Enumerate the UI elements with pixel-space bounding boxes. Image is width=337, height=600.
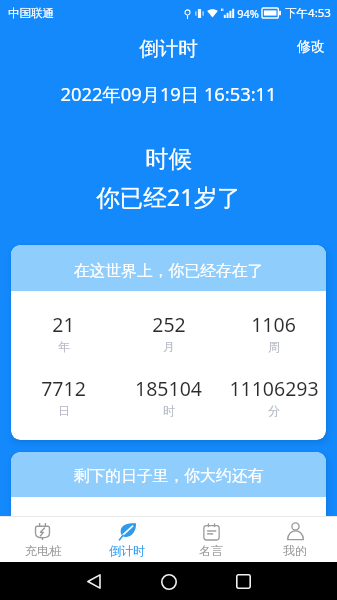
button[interactable]: 充电桩: [0, 517, 85, 562]
staticText: 7712: [41, 375, 86, 402]
staticText: 94%: [237, 6, 259, 21]
staticText: 日: [58, 403, 70, 418]
button[interactable]: 我的: [253, 517, 337, 562]
staticText: 倒计时: [0, 36, 337, 61]
staticText: 中国联通: [8, 6, 54, 20]
button[interactable]: 修改: [283, 34, 337, 60]
staticText: 252: [152, 311, 186, 338]
staticText: 时: [163, 403, 175, 418]
staticText: 剩下的日子里，你大约还有: [11, 466, 326, 486]
staticText: 下午4:53: [285, 5, 331, 21]
staticText: 在这世界上，你已经存在了: [11, 261, 326, 281]
staticText: 月: [163, 339, 175, 354]
staticText: 周: [268, 339, 280, 354]
button[interactable]: 名言: [169, 517, 253, 562]
staticText: 倒计时: [109, 543, 145, 558]
staticText: 修改: [297, 38, 325, 56]
staticText: 充电桩: [25, 543, 61, 558]
staticText: 年: [58, 339, 70, 354]
staticText: 21: [52, 311, 75, 338]
button[interactable]: Recent apps: [229, 567, 258, 596]
staticText: 11106293: [229, 375, 319, 402]
staticText: 1106: [251, 311, 296, 338]
staticText: 时候: [0, 144, 337, 174]
staticText: 你已经21岁了: [0, 181, 337, 213]
staticText: 名言: [199, 543, 223, 558]
button[interactable]: 倒计时: [85, 517, 169, 562]
button[interactable]: Back: [79, 567, 108, 596]
staticText: 我的: [283, 543, 307, 558]
button[interactable]: Home: [154, 567, 183, 596]
staticText: 185104: [135, 375, 202, 402]
staticText: 分: [268, 403, 280, 418]
staticText: 2022年09月19日 16:53:11: [0, 81, 337, 106]
